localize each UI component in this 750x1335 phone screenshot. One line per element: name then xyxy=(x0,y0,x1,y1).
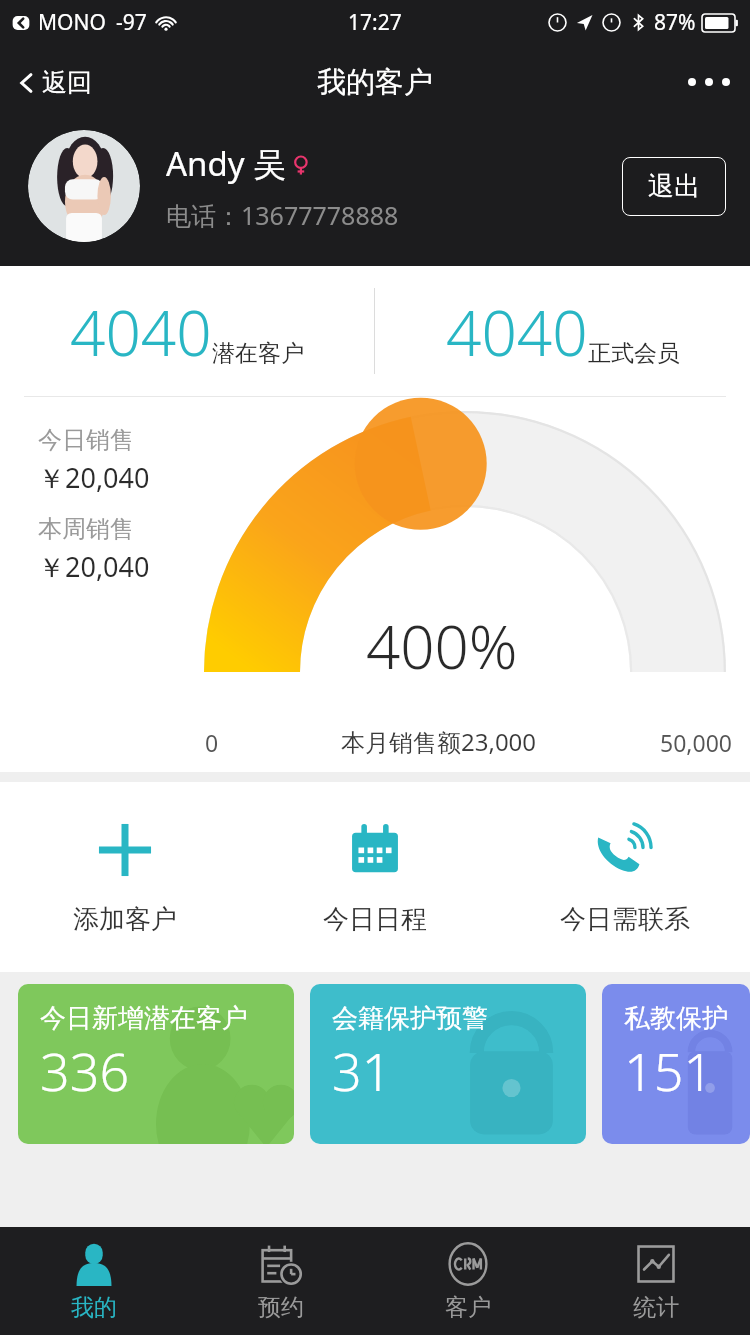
staticText: 87% xyxy=(654,8,696,37)
staticText: 添加客户 xyxy=(73,903,177,936)
staticText: 400% xyxy=(366,605,518,687)
button[interactable]: 今日需联系 xyxy=(500,782,750,972)
staticText: 今日销售 xyxy=(38,425,134,455)
staticText: 我的 xyxy=(71,1293,117,1322)
staticText: 会籍保护预警 xyxy=(332,1002,488,1035)
staticText: 我的客户 xyxy=(317,64,433,101)
staticText: 336 xyxy=(40,1035,130,1106)
button[interactable]: 退出 xyxy=(622,157,726,216)
button[interactable]: 今日日程 xyxy=(250,782,500,972)
staticText: 电话：13677778888 xyxy=(166,198,399,232)
button[interactable]: 会籍保护预警 xyxy=(310,984,586,1144)
staticText: 31 xyxy=(332,1035,392,1106)
button[interactable]: 预约 xyxy=(187,1227,374,1335)
staticText: 50,000 xyxy=(660,727,732,758)
staticText: 今日需联系 xyxy=(560,903,690,936)
button[interactable]: 4040 xyxy=(0,266,374,396)
staticText: 4040 xyxy=(70,290,212,374)
button[interactable]: 4040 xyxy=(375,266,750,396)
staticText: ￥20,040 xyxy=(38,459,150,496)
staticText: 私教保护预警 xyxy=(624,1002,750,1035)
staticText: 151 xyxy=(624,1035,714,1106)
button[interactable]: 今日新增潜在客户 xyxy=(18,984,294,1144)
button[interactable]: 统计 xyxy=(562,1227,750,1335)
staticText: 今日日程 xyxy=(323,903,427,936)
staticText: -97 xyxy=(116,8,147,37)
staticText: ￥20,040 xyxy=(38,548,150,585)
staticText: 本周销售 xyxy=(38,514,134,544)
staticText: 客户 xyxy=(445,1293,491,1322)
staticText: 退出 xyxy=(648,170,700,203)
staticText: 潜在客户 xyxy=(212,339,304,368)
button[interactable]: More options xyxy=(668,62,750,102)
staticText: 返回 xyxy=(42,67,92,98)
staticText: 本月销售额23,000 xyxy=(341,725,537,758)
button[interactable]: 返回 xyxy=(0,59,112,106)
staticText: 0 xyxy=(205,727,219,758)
staticText: 统计 xyxy=(633,1293,679,1322)
button[interactable]: 我的 xyxy=(0,1227,187,1335)
button[interactable]: 私教保护预警 xyxy=(602,984,750,1144)
staticText: 17:27 xyxy=(348,8,402,37)
staticText: Andy 吴 xyxy=(166,141,287,186)
staticText: 4040 xyxy=(446,290,588,374)
staticText: 正式会员 xyxy=(588,339,680,368)
staticText: MONO xyxy=(38,8,106,37)
button[interactable]: 客户 xyxy=(374,1227,562,1335)
button[interactable]: 添加客户 xyxy=(0,782,250,972)
button[interactable] xyxy=(28,130,140,242)
staticText: 今日新增潜在客户 xyxy=(40,1002,248,1035)
staticText: 预约 xyxy=(258,1293,304,1322)
